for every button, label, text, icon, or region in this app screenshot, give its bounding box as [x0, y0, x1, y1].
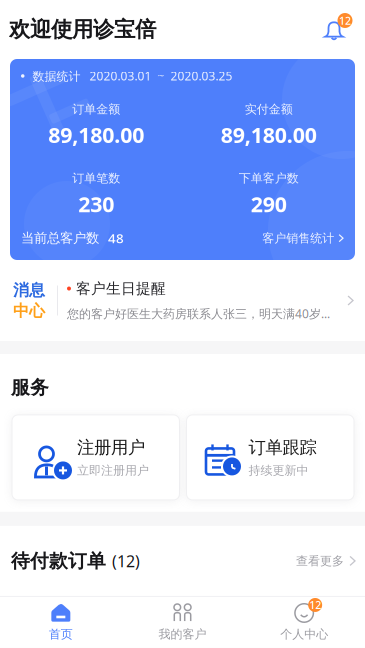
staticText: 数据统计 2020.03.01: [24, 68, 151, 84]
staticText: 订单金额: [72, 102, 120, 117]
staticText: 当前总客户数: [21, 230, 99, 246]
staticText: 立即注册用户: [77, 463, 149, 478]
button[interactable]: 待付款订单: [0, 526, 365, 596]
staticText: 2020.03.25: [170, 68, 232, 84]
staticText: 89,180.00: [221, 121, 317, 149]
staticText: 待付款订单: [11, 549, 112, 572]
staticText: 230: [78, 190, 114, 218]
button[interactable]: 通知: [317, 14, 351, 44]
staticText: 中心: [13, 301, 45, 321]
staticText: 客户销售统计: [262, 231, 334, 245]
button[interactable]: 订单跟踪: [186, 415, 354, 500]
button[interactable]: 注册用户: [12, 415, 179, 500]
staticText: 您的客户好医生大药房联系人张三，明天满40岁...: [67, 305, 330, 321]
staticText: (12): [112, 550, 140, 571]
button[interactable]: 12: [243, 597, 365, 648]
staticText: 12: [309, 598, 321, 612]
button[interactable]: 客户销售统计: [262, 231, 344, 245]
button[interactable]: 首页: [0, 597, 122, 648]
button[interactable]: 消息: [0, 260, 365, 341]
staticText: 查看更多: [296, 554, 344, 568]
staticText: 290: [251, 190, 287, 218]
staticText: ~: [151, 68, 170, 84]
staticText: 下单客户数: [239, 171, 299, 186]
staticText: 消息: [13, 280, 45, 300]
staticText: 服务: [11, 376, 49, 399]
staticText: 欢迎使用诊宝倍: [9, 16, 156, 43]
staticText: 实付金额: [245, 102, 293, 117]
staticText: 订单跟踪: [248, 437, 316, 458]
staticText: 客户生日提醒: [76, 279, 166, 297]
staticText: 订单笔数: [72, 171, 120, 186]
staticText: 首页: [49, 627, 73, 642]
staticText: 48: [99, 229, 124, 247]
staticText: 89,180.00: [48, 121, 144, 149]
staticText: 持续更新中: [248, 463, 308, 478]
staticText: 注册用户: [77, 437, 145, 458]
staticText: 我的客户: [158, 627, 206, 642]
staticText: 12: [339, 13, 351, 28]
staticText: 个人中心: [280, 627, 328, 642]
button[interactable]: 我的客户: [122, 597, 243, 648]
